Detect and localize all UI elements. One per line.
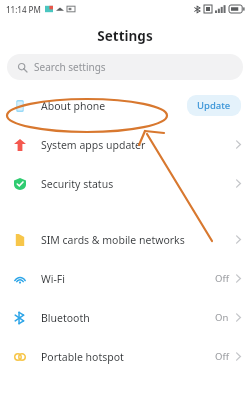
- staticText: Off: [215, 272, 229, 285]
- staticText: Update: [197, 99, 231, 112]
- button[interactable]: Search settings: [7, 54, 243, 80]
- button[interactable]: Security status: [0, 164, 250, 203]
- other: Open Portable hotspot: [236, 352, 241, 361]
- staticText: On: [215, 311, 229, 324]
- staticText: Off: [215, 350, 229, 363]
- button[interactable]: Wi-Fi: [0, 259, 250, 298]
- staticText: Bluetooth: [41, 311, 90, 325]
- other: Open Wi-Fi: [236, 274, 241, 283]
- staticText: Wi-Fi: [41, 272, 66, 286]
- staticText: Security status: [41, 177, 114, 191]
- button[interactable]: Update: [187, 95, 241, 116]
- button[interactable]: Bluetooth: [0, 298, 250, 337]
- staticText: SIM cards & mobile networks: [41, 233, 185, 247]
- other: Open Security status: [236, 179, 241, 188]
- button[interactable]: SIM cards & mobile networks: [0, 220, 250, 259]
- other: Open System apps updater: [236, 140, 241, 149]
- button[interactable]: System apps updater: [0, 125, 250, 164]
- other: Open SIM cards & mobile networks: [236, 235, 241, 244]
- staticText: Portable hotspot: [41, 350, 124, 364]
- button[interactable]: About phone: [0, 86, 250, 125]
- staticText: Settings: [97, 27, 153, 45]
- staticText: Search settings: [34, 60, 106, 74]
- staticText: System apps updater: [41, 138, 146, 152]
- staticText: 11:14 PM: [6, 4, 41, 15]
- button[interactable]: Portable hotspot: [0, 337, 250, 376]
- other: Open Bluetooth: [236, 313, 241, 322]
- staticText: About phone: [41, 99, 106, 113]
